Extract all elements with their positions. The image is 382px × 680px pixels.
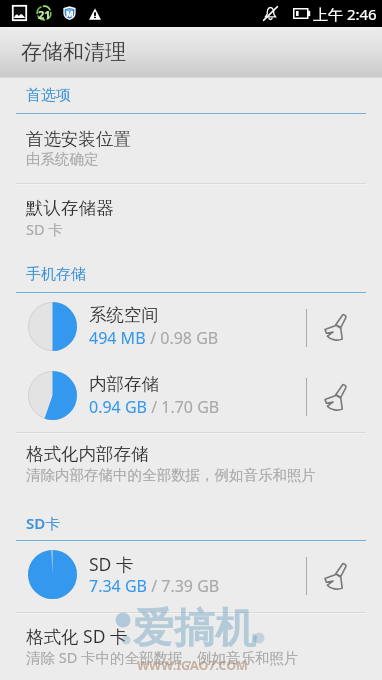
button[interactable]: 清理 bbox=[312, 362, 360, 432]
button[interactable]: 首选安装位置 bbox=[0, 120, 382, 183]
button[interactable]: 清理 bbox=[312, 293, 360, 362]
staticText: 手机存储 bbox=[26, 265, 86, 284]
button[interactable]: 内部存储 bbox=[0, 362, 382, 432]
staticText: 494 MB bbox=[89, 327, 146, 349]
staticText: 上午 2:46 bbox=[313, 4, 377, 24]
button[interactable]: 清理 bbox=[312, 541, 360, 611]
staticText: 爱搞机 bbox=[133, 603, 256, 655]
staticText: SD卡 bbox=[26, 513, 61, 533]
staticText: 首选项 bbox=[26, 86, 71, 105]
button[interactable]: 格式化 SD 卡 bbox=[0, 616, 382, 676]
staticText: 存储和清理 bbox=[21, 39, 126, 65]
staticText: / 7.39 GB bbox=[147, 575, 220, 597]
staticText: WWW.IGAO7.COM bbox=[137, 657, 248, 674]
staticText: 清除内部存储中的全部数据，例如音乐和照片 bbox=[26, 466, 316, 484]
button[interactable]: 默认存储器 bbox=[0, 189, 382, 249]
staticText: SD 卡 bbox=[89, 552, 134, 576]
staticText: 内部存储 bbox=[89, 373, 159, 395]
staticText: 清除 SD 卡中的全部数据，例如音乐和照片 bbox=[26, 647, 299, 667]
button[interactable]: 格式化内部存储 bbox=[0, 435, 382, 495]
staticText: 7.34 GB bbox=[89, 575, 147, 597]
staticText: 首选安装位置 bbox=[26, 128, 131, 150]
staticText: / 1.70 GB bbox=[147, 396, 220, 418]
staticText: / 0.98 GB bbox=[146, 327, 219, 349]
staticText: 0.94 GB bbox=[89, 396, 147, 418]
staticText: M bbox=[66, 8, 74, 19]
staticText: 系统空间 bbox=[89, 304, 159, 326]
button[interactable]: 系统空间 bbox=[0, 293, 382, 362]
staticText: SD 卡 bbox=[26, 219, 63, 239]
staticText: 21 bbox=[38, 7, 51, 22]
staticText: 格式化 SD 卡 bbox=[26, 624, 128, 648]
staticText: 默认存储器 bbox=[26, 197, 114, 219]
button[interactable]: SD 卡 bbox=[0, 541, 382, 611]
staticText: 格式化内部存储 bbox=[26, 443, 149, 465]
staticText: 由系统确定 bbox=[26, 150, 99, 168]
